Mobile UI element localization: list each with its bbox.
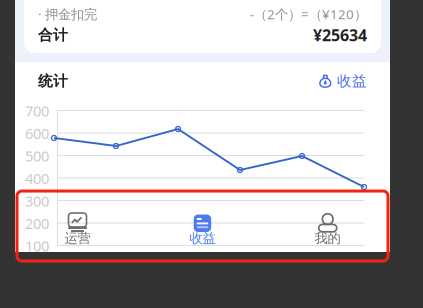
staticText: · 押金扣完	[38, 5, 97, 23]
staticText: 收益	[337, 72, 367, 90]
staticText: 运营	[64, 230, 90, 246]
button[interactable]: 收益	[140, 197, 265, 252]
staticText: 600	[25, 123, 49, 143]
staticText: 400	[25, 168, 49, 188]
staticText: -（2个）=（¥120）	[250, 5, 367, 23]
staticText: 收益	[189, 230, 215, 246]
staticText: 500	[25, 146, 49, 165]
button[interactable]: 收益	[319, 72, 367, 90]
staticText: 200	[25, 213, 49, 233]
button[interactable]: 运营	[15, 197, 140, 252]
staticText: 100	[25, 236, 49, 255]
staticText: 我的	[314, 230, 340, 246]
staticText: 300	[25, 191, 49, 210]
staticText: ¥25634	[313, 24, 367, 46]
staticText: 合计	[38, 26, 68, 44]
button[interactable]: 我的	[265, 197, 390, 252]
staticText: 700	[25, 101, 49, 120]
staticText: 统计	[38, 72, 68, 90]
